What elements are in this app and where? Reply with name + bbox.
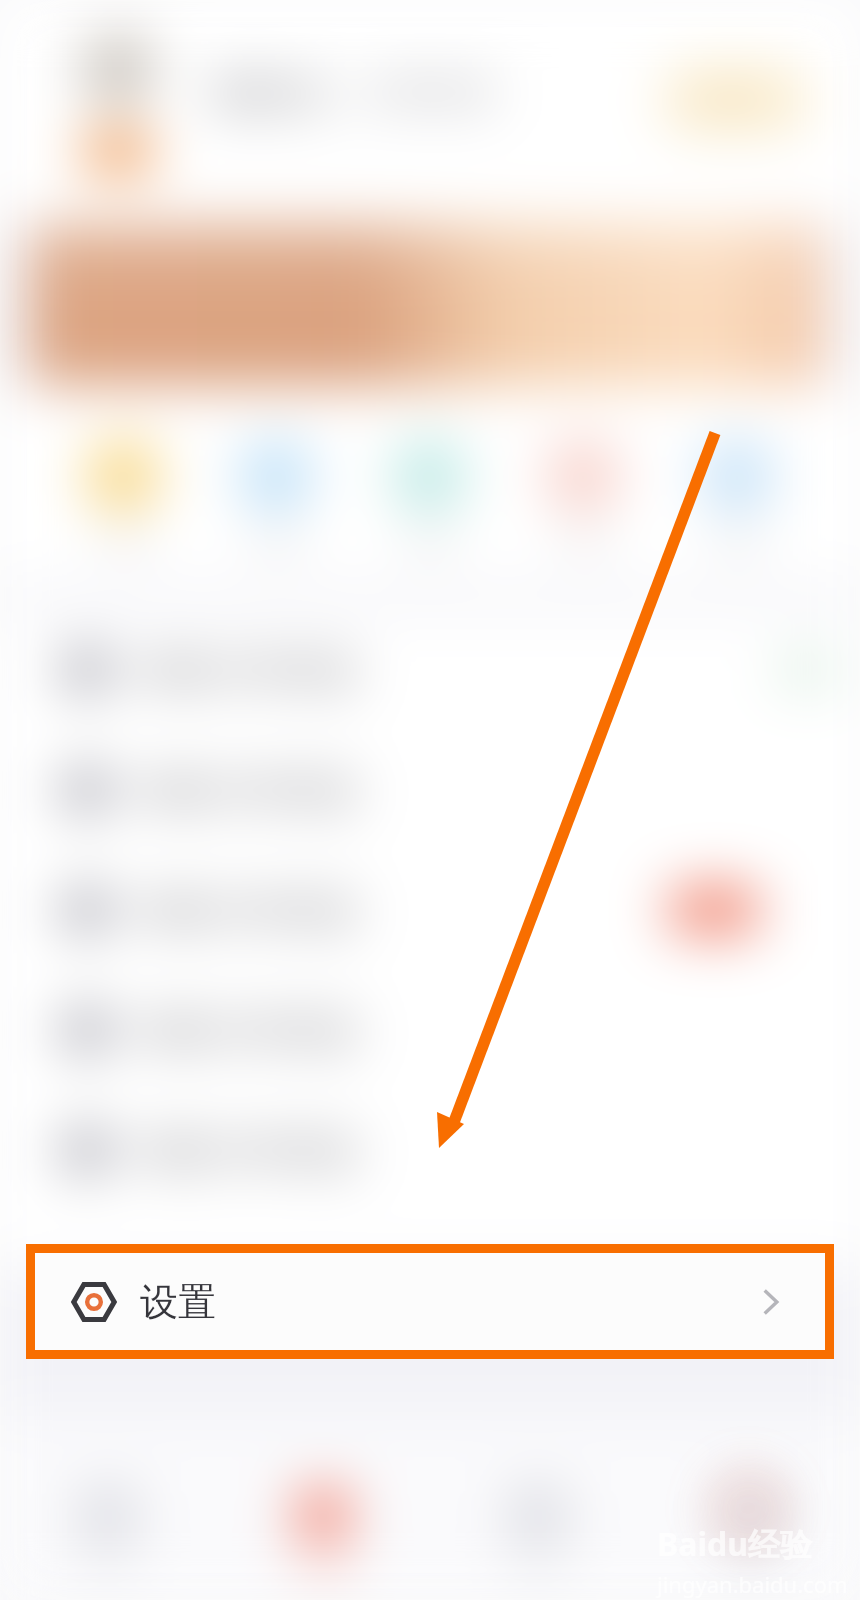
- button[interactable]: 我的订单消息: [0, 850, 860, 970]
- button[interactable]: 我的订单消息: [0, 970, 860, 1090]
- button[interactable]: 功能: [46, 438, 199, 556]
- staticText: 分类: [299, 1554, 347, 1584]
- button[interactable]: 我的订单消息: [0, 1090, 860, 1210]
- button[interactable]: 功能: [199, 438, 352, 556]
- button[interactable]: 首页: [0, 1488, 215, 1584]
- button[interactable]: 功能: [660, 438, 814, 556]
- staticText: 设置: [140, 1278, 216, 1326]
- button[interactable]: 我的订单消息: [0, 730, 860, 850]
- other: Settings: [72, 1280, 116, 1324]
- button[interactable]: Profile picture: [80, 32, 156, 108]
- staticText: Baidu经验: [657, 1522, 813, 1566]
- button[interactable]: 我的订单消息: [0, 610, 860, 730]
- staticText: 昵称名: [213, 68, 333, 118]
- button[interactable]: 功能: [506, 438, 660, 556]
- button[interactable]: 消息: [430, 1488, 645, 1584]
- button[interactable]: 昵称名: [213, 68, 497, 118]
- button[interactable]: 会员中心: [660, 66, 810, 134]
- button[interactable]: 我的: [645, 1488, 860, 1584]
- staticText: 会员中心: [687, 85, 783, 115]
- staticText: 我的: [729, 1554, 777, 1584]
- other: Open settings: [751, 1283, 789, 1321]
- other: Annotation arrow: [0, 0, 860, 1600]
- button[interactable]: 分类: [215, 1488, 430, 1584]
- staticText: 功能: [101, 528, 145, 556]
- button[interactable]: Membership banner: [30, 222, 824, 386]
- button[interactable]: Membership level: [80, 130, 156, 174]
- button[interactable]: 功能: [352, 438, 506, 556]
- button[interactable]: Settings: [35, 1253, 825, 1350]
